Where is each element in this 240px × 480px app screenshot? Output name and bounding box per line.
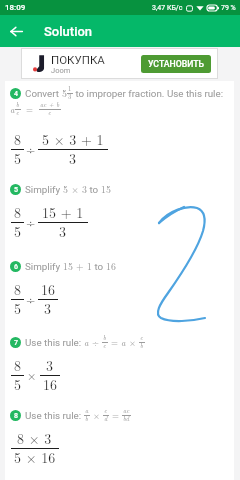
staticText: 16 bbox=[41, 279, 55, 299]
staticText: 8 × 3 bbox=[17, 428, 52, 448]
staticText: 15 bbox=[101, 182, 111, 196]
staticText: × bbox=[27, 366, 37, 383]
staticText: 8 bbox=[14, 279, 21, 299]
staticText: ÷ bbox=[26, 140, 36, 157]
staticText: to bbox=[87, 184, 101, 195]
staticText: 16 bbox=[43, 374, 57, 394]
staticText: c bbox=[16, 108, 20, 117]
staticText: 5 × 16 bbox=[14, 447, 56, 467]
staticText: 3 bbox=[44, 298, 51, 318]
staticText: ПОКУПКА bbox=[51, 53, 105, 66]
staticText: УСТАНОВИТЬ bbox=[148, 59, 204, 69]
staticText: c bbox=[103, 341, 107, 350]
staticText: bd bbox=[123, 414, 130, 423]
staticText: c bbox=[104, 406, 108, 415]
button[interactable]: Back bbox=[3, 18, 29, 44]
staticText: d bbox=[104, 414, 108, 423]
staticText: b bbox=[85, 414, 89, 423]
button[interactable]: 6 bbox=[10, 259, 234, 273]
staticText: 5 × 3 bbox=[63, 182, 87, 196]
staticText: × bbox=[90, 409, 103, 422]
button[interactable]: 7 bbox=[10, 336, 234, 349]
staticText: 16 bbox=[106, 259, 116, 273]
staticText: to bbox=[92, 261, 106, 272]
staticText: 3 bbox=[68, 92, 72, 101]
button[interactable]: УСТАНОВИТЬ bbox=[141, 55, 211, 73]
staticText: ÷ bbox=[26, 290, 36, 307]
staticText: a bbox=[84, 336, 89, 349]
staticText: a bbox=[121, 336, 126, 349]
staticText: = bbox=[108, 336, 121, 349]
staticText: 8 bbox=[14, 412, 18, 420]
staticText: Simplify bbox=[25, 261, 63, 272]
button[interactable]: 4 bbox=[10, 86, 234, 100]
staticText: Solution bbox=[44, 24, 93, 39]
staticText: 3 bbox=[59, 221, 66, 241]
button[interactable]: 5 bbox=[10, 182, 234, 196]
staticText: Convert bbox=[25, 88, 62, 99]
staticText: 5 × 3 + 1 bbox=[42, 129, 104, 149]
staticText: 5 bbox=[62, 86, 67, 100]
staticText: 5 bbox=[14, 298, 21, 318]
staticText: 3,47 КБ/с bbox=[152, 4, 183, 12]
staticText: 15 + 1 bbox=[63, 259, 92, 273]
button[interactable]: 8 bbox=[10, 409, 234, 422]
staticText: 4 bbox=[14, 90, 18, 98]
staticText: 18:09 bbox=[5, 3, 26, 12]
staticText: a bbox=[10, 103, 15, 116]
staticText: 5 bbox=[14, 148, 21, 168]
staticText: c bbox=[140, 333, 144, 342]
staticText: 5 bbox=[14, 186, 18, 194]
staticText: 3 bbox=[46, 355, 53, 375]
button[interactable]: ПОКУПКА bbox=[22, 49, 217, 78]
staticText: 79 % bbox=[221, 4, 236, 12]
staticText: b bbox=[16, 100, 20, 109]
staticText: 8 bbox=[14, 202, 21, 222]
staticText: 15 + 1 bbox=[42, 202, 84, 222]
staticText: 8 bbox=[14, 129, 21, 149]
staticText: Simplify bbox=[25, 184, 63, 195]
staticText: ac bbox=[123, 406, 130, 415]
staticText: = bbox=[109, 409, 122, 422]
staticText: Use this rule: bbox=[25, 337, 84, 348]
staticText: ÷ bbox=[89, 336, 102, 349]
staticText: 6 bbox=[14, 263, 18, 271]
staticText: b bbox=[103, 333, 107, 342]
staticText: c bbox=[48, 108, 52, 117]
staticText: b bbox=[140, 341, 144, 350]
staticText: ac + b bbox=[40, 100, 60, 109]
staticText: Use this rule: bbox=[25, 410, 84, 421]
staticText: 3 bbox=[69, 148, 76, 168]
staticText: 5 bbox=[14, 374, 21, 394]
staticText: 8 bbox=[14, 355, 21, 375]
staticText: a bbox=[85, 406, 89, 415]
staticText: × bbox=[126, 336, 139, 349]
staticText: = bbox=[26, 103, 34, 116]
staticText: 7 bbox=[14, 339, 18, 347]
staticText: Joom bbox=[51, 66, 71, 75]
staticText: ÷ bbox=[26, 213, 36, 230]
staticText: 5 bbox=[14, 221, 21, 241]
staticText: to improper fraction. Use this rule: bbox=[73, 88, 224, 99]
staticText: 1 bbox=[68, 84, 72, 93]
